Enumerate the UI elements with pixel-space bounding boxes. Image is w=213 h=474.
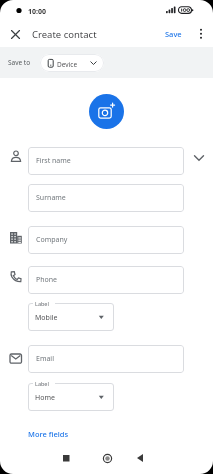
staticText: Create contact <box>32 28 97 41</box>
button[interactable]: Email <box>28 345 184 373</box>
button[interactable]: Save <box>158 26 188 42</box>
staticText: Surname <box>36 193 66 203</box>
button[interactable]: Company <box>28 226 184 254</box>
button[interactable]: Device <box>40 54 104 72</box>
button[interactable]: Phone <box>28 266 184 294</box>
staticText: Company <box>36 235 68 245</box>
button[interactable]: More fields <box>24 426 84 442</box>
button[interactable]: Label <box>28 383 114 411</box>
button[interactable] <box>97 448 117 468</box>
staticText: 10:00 <box>28 7 46 17</box>
staticText: First name <box>36 156 71 166</box>
staticText: Home <box>35 393 55 403</box>
button[interactable] <box>130 448 150 468</box>
button[interactable] <box>56 448 76 468</box>
staticText: Device <box>57 60 78 69</box>
button[interactable]: Label <box>28 303 114 331</box>
button[interactable] <box>190 150 207 166</box>
button[interactable]: Surname <box>28 184 184 212</box>
staticText: Label <box>35 380 49 387</box>
staticText: Save <box>165 29 182 39</box>
staticText: Phone <box>36 275 58 285</box>
staticText: More fields <box>28 429 69 439</box>
button[interactable]: First name <box>28 147 184 175</box>
button[interactable] <box>193 25 209 43</box>
staticText: Mobile <box>35 313 58 323</box>
staticText: Email <box>36 354 54 364</box>
button[interactable] <box>6 25 24 43</box>
button[interactable] <box>89 94 124 129</box>
staticText: Label <box>35 300 49 307</box>
staticText: Save to <box>8 58 31 67</box>
